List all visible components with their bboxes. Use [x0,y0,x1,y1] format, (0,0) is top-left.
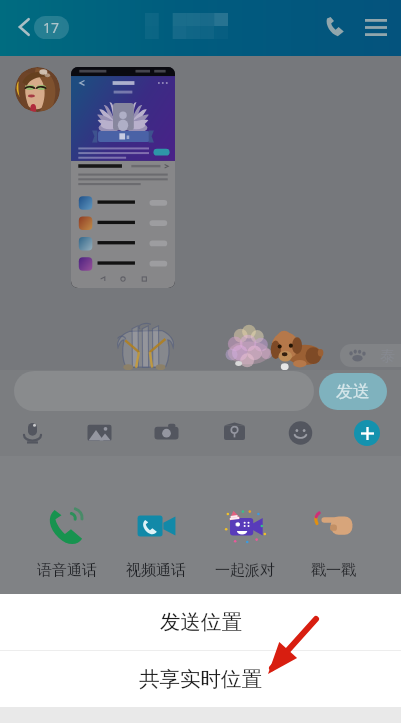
staticText: 戳一戳 [311,561,356,580]
button[interactable]: 共享实时位置 [0,651,401,707]
button[interactable]: Menu [360,11,392,43]
staticText: 语音通话 [37,561,97,580]
staticText: 发送 [336,381,370,402]
button[interactable]: Back [12,14,38,40]
button[interactable]: 17 [34,16,69,39]
staticText: 发送位置 [160,609,242,635]
button[interactable]: 泰 [340,344,401,367]
button[interactable]: 一起派对 [201,506,289,580]
button[interactable]: Voice message [15,416,49,450]
button[interactable]: Red packet [217,416,251,450]
button[interactable]: 发送位置 [0,594,401,650]
button[interactable]: More [354,420,380,446]
button[interactable]: Emoji [283,416,317,450]
button[interactable]: Photos [82,416,116,450]
button[interactable]: 发送 [319,373,387,410]
button[interactable]: Avatar [15,67,60,112]
button[interactable]: 戳一戳 [289,506,377,580]
button[interactable]: 视频通话 [112,506,200,580]
staticText: 一起派对 [215,561,275,580]
staticText: 共享实时位置 [139,666,262,692]
staticText: 17 [43,18,60,37]
staticText: 泰 [380,347,395,366]
staticText: 视频通话 [126,561,186,580]
button[interactable]: Call [319,11,351,43]
button[interactable] [71,67,175,288]
button[interactable]: 语音通话 [23,506,111,580]
button[interactable]: Camera [149,416,183,450]
